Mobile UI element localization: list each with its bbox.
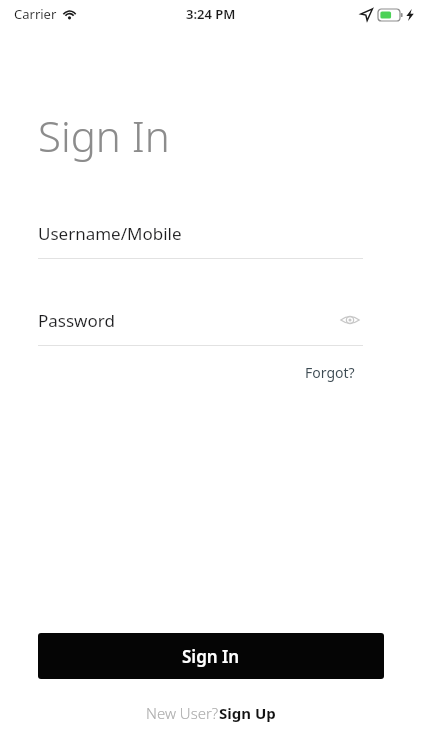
- button[interactable]: Password: [38, 309, 363, 346]
- staticText: Sign In: [38, 107, 170, 164]
- staticText: Password: [38, 309, 115, 332]
- staticText: 3:24 PM: [186, 5, 236, 23]
- button[interactable]: Forgot?: [303, 361, 357, 384]
- button[interactable]: Sign In: [38, 633, 384, 679]
- button[interactable]: Show password: [337, 307, 363, 333]
- staticText: New User?: [146, 703, 219, 723]
- button[interactable]: Sign Up: [219, 703, 276, 723]
- staticText: Username/Mobile: [38, 222, 182, 245]
- button[interactable]: Username/Mobile: [38, 222, 363, 259]
- staticText: Carrier: [14, 5, 57, 23]
- staticText: Forgot?: [305, 363, 355, 382]
- staticText: Sign Up: [219, 703, 276, 723]
- staticText: Sign In: [182, 645, 240, 668]
